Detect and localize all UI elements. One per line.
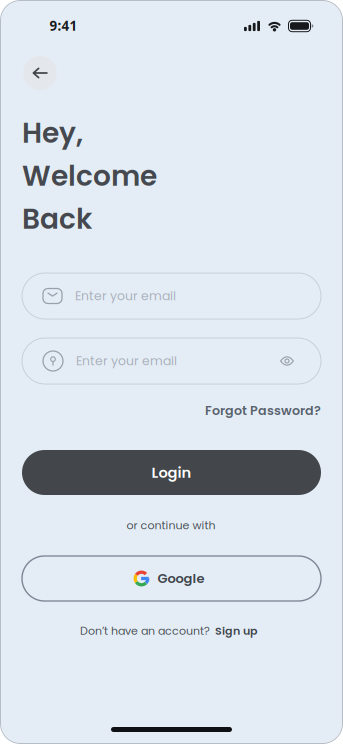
staticText: Welcome [22,156,157,196]
staticText: Hey, [22,113,83,153]
staticText: Enter your email [75,287,176,305]
staticText: Don’t have an account? [80,623,210,639]
button[interactable]: Google [22,556,321,601]
button[interactable]: Enter your email [22,273,321,319]
button[interactable]: Forgot Password? [205,402,321,419]
staticText: Enter your email [76,352,177,370]
button[interactable]: Login [22,450,321,495]
staticText: or continue with [126,518,215,533]
staticText: Login [151,462,191,483]
button[interactable]: Sign up [215,623,258,639]
staticText: Back [22,199,92,239]
staticText: Google [157,569,204,588]
button[interactable]: Enter your email [22,338,321,384]
staticText: Forgot Password? [205,402,321,419]
staticText: Sign up [215,623,258,639]
staticText: 9:41 [49,17,77,34]
button[interactable] [23,56,57,90]
